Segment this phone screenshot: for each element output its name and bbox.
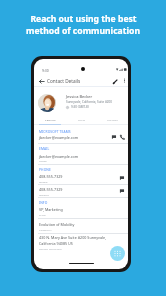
button[interactable]: PROFILE — [34, 115, 66, 124]
staticText: PHONE — [39, 167, 51, 171]
staticText: HOME — [39, 159, 47, 162]
staticText: INFO — [39, 200, 48, 204]
staticText: Contact Details — [47, 78, 81, 84]
staticText: jbecker@example.com — [39, 154, 79, 159]
button[interactable]: Back — [37, 77, 46, 86]
button[interactable]: More options — [122, 78, 127, 83]
button[interactable]: Call — [119, 134, 125, 140]
button[interactable]: HISTORY — [97, 115, 128, 124]
button[interactable]: Chat — [119, 188, 125, 194]
staticText: Mobile — [39, 180, 48, 183]
button[interactable]: Chat — [119, 175, 125, 181]
button[interactable]: TEAM — [66, 115, 97, 124]
staticText: TEAM — [78, 118, 86, 121]
staticText: Jessica Becker — [66, 94, 93, 99]
staticText: Reach out using the best — [30, 13, 137, 25]
staticText: California 94085 US — [39, 241, 73, 246]
staticText: MICROSOFT TEAMS — [39, 129, 71, 133]
staticText: MOBILE — [39, 193, 49, 196]
button[interactable]: Apps — [110, 246, 125, 261]
staticText: Sunnyvale, California, Suite #200 — [66, 100, 113, 104]
staticText: TITLE — [39, 213, 46, 216]
staticText: Evolution of Mobility — [39, 222, 75, 227]
staticText: PROFILE — [45, 118, 56, 121]
staticText: 9:30 — [42, 68, 49, 73]
button[interactable]: Chat — [111, 134, 117, 140]
staticText: COMPANY — [39, 228, 52, 231]
staticText: jbecker@example.com — [39, 135, 79, 140]
staticText: VP, Marketing — [39, 207, 63, 212]
staticText: OFFICE LOCATION — [39, 247, 62, 250]
button[interactable]: Edit — [112, 78, 119, 85]
staticText: 9:30 (GMT-8) — [71, 105, 89, 109]
staticText: 408-555-7329 — [39, 187, 63, 192]
staticText: EMAIL — [39, 146, 50, 150]
staticText: 430 N. Mary Ave Suite #200 Sunnyvale, — [39, 235, 107, 240]
staticText: HISTORY — [107, 118, 119, 121]
staticText: method of communication — [26, 25, 140, 37]
staticText: 408-555-7329 — [39, 174, 63, 179]
